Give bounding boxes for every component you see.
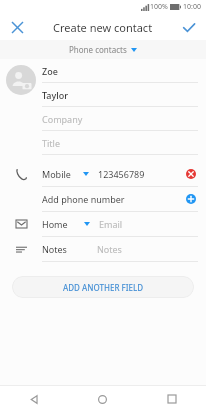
button[interactable]: Add phone number	[0, 187, 206, 211]
staticText: Email	[99, 218, 123, 230]
staticText: Zoe	[42, 65, 58, 77]
button[interactable]: Save	[172, 14, 206, 40]
button[interactable]: Cancel	[0, 14, 34, 40]
staticText: Phone contacts	[69, 44, 127, 55]
button[interactable]: Recent apps	[137, 386, 206, 412]
staticText: Add phone number	[42, 193, 125, 205]
button[interactable]: ADD ANOTHER FIELD	[12, 276, 194, 298]
button[interactable]: Back	[0, 386, 68, 412]
button[interactable]: Home	[68, 386, 137, 412]
button[interactable]: Notes	[0, 237, 206, 261]
button[interactable]: Add phone number	[180, 188, 202, 210]
button[interactable]: Home	[0, 212, 206, 236]
staticText: 100%	[150, 2, 168, 12]
staticText: Mobile	[42, 168, 71, 180]
staticText: Company	[42, 113, 83, 125]
staticText: Home	[42, 218, 68, 230]
staticText: Notes	[42, 243, 67, 255]
staticText: Taylor	[42, 89, 68, 101]
staticText: ADD ANOTHER FIELD	[63, 282, 144, 293]
button[interactable]: Add photo	[6, 65, 36, 95]
staticText: Title	[42, 137, 60, 149]
button[interactable]: Remove phone number	[180, 163, 202, 185]
staticText: Notes	[97, 243, 122, 255]
button[interactable]: Phone contacts	[0, 40, 206, 59]
staticText: 10:00	[183, 2, 201, 12]
staticText: Create new contact	[53, 20, 153, 35]
button[interactable]: Title	[42, 131, 198, 155]
staticText: 123456789	[98, 168, 145, 180]
button[interactable]: Zoe	[42, 59, 198, 83]
button[interactable]: Company	[42, 107, 198, 131]
button[interactable]: Taylor	[42, 83, 198, 107]
button[interactable]: Mobile	[0, 162, 206, 186]
